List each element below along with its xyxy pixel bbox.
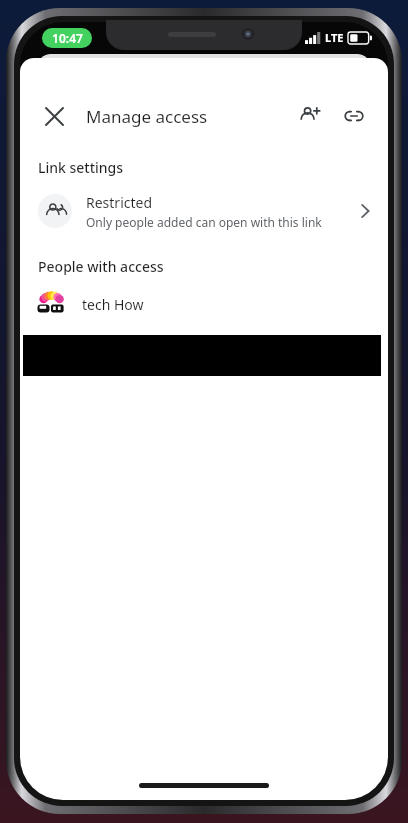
staticText: People with access	[38, 257, 164, 276]
staticText: Restricted	[86, 193, 153, 212]
button[interactable]: Close	[34, 96, 74, 136]
button[interactable]: tech How	[20, 282, 388, 326]
staticText: LTE	[325, 30, 344, 45]
staticText: Manage access	[86, 105, 208, 128]
button[interactable]: Copy link	[334, 96, 374, 136]
staticText: Only people added can open with this lin…	[86, 214, 322, 230]
button[interactable]: Restricted	[20, 183, 388, 239]
button[interactable]: Add people	[290, 96, 330, 136]
staticText: Link settings	[38, 158, 124, 177]
staticText: 10:47	[52, 30, 83, 46]
staticText: tech How	[82, 295, 144, 314]
